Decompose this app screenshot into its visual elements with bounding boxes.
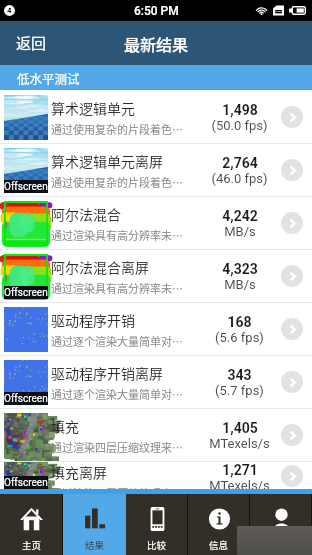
button[interactable]: 主页: [0, 494, 63, 555]
staticText: (46.0 fps): [211, 171, 268, 186]
staticText: 返回: [16, 32, 47, 54]
staticText: 343: [227, 367, 252, 383]
staticText: 4,323: [222, 261, 258, 277]
staticText: 最新结果: [124, 32, 189, 55]
button[interactable]: 阿尔法混合: [0, 197, 312, 250]
staticText: MB/s: [224, 224, 256, 239]
staticText: MB/s: [224, 277, 256, 292]
staticText: 通过逐个渲染大量简单对…: [51, 333, 183, 349]
staticText: 通过渲染四层压缩纹理来…: [51, 485, 183, 489]
staticText: 通过逐个渲染大量简单对…: [51, 386, 183, 402]
staticText: 算术逻辑单元: [51, 98, 135, 118]
staticText: 4: [7, 6, 12, 15]
staticText: 1,271: [222, 462, 258, 478]
button[interactable]: Offscreen: [0, 356, 312, 409]
staticText: 比较: [147, 538, 167, 552]
staticText: 低水平测试: [17, 69, 80, 87]
staticText: (50.0 fps): [211, 118, 268, 133]
button[interactable]: 返回: [0, 21, 63, 65]
staticText: 通过渲染具有高分辨率未…: [51, 280, 183, 296]
button[interactable]: Offscreen: [0, 250, 312, 303]
button[interactable]: 结果: [63, 494, 126, 555]
staticText: 填充: [51, 416, 79, 436]
staticText: 驱动程序开销: [51, 310, 135, 330]
staticText: 结果: [85, 538, 105, 552]
button[interactable]: 驱动程序开销: [0, 303, 312, 356]
staticText: (5.7 fps): [215, 383, 264, 398]
staticText: Offscreen: [4, 181, 48, 193]
staticText: 填充离屏: [51, 462, 107, 482]
staticText: 4,242: [222, 208, 258, 224]
button[interactable]: Profile: [250, 494, 312, 555]
button[interactable]: 填充: [0, 409, 312, 462]
button[interactable]: Offscreen: [0, 144, 312, 197]
staticText: 通过渲染具有高分辨率未…: [51, 227, 183, 243]
button[interactable]: 算术逻辑单元: [0, 91, 312, 144]
staticText: 1,405: [222, 420, 258, 436]
staticText: 阿尔法混合离屏: [51, 257, 149, 277]
staticText: Offscreen: [4, 287, 48, 299]
staticText: 168: [227, 314, 252, 330]
staticText: 6:50 PM: [134, 4, 179, 18]
staticText: 通过使用复杂的片段着色…: [51, 174, 183, 190]
staticText: 1,498: [222, 102, 258, 118]
staticText: Offscreen: [4, 477, 48, 489]
staticText: (5.6 fps): [215, 330, 264, 345]
staticText: MTexels/s: [209, 478, 270, 489]
button[interactable]: 信息: [188, 494, 250, 555]
staticText: 阿尔法混合: [51, 204, 121, 224]
staticText: 算术逻辑单元离屏: [51, 151, 163, 171]
staticText: 2,764: [222, 155, 258, 171]
staticText: 主页: [22, 538, 42, 552]
button[interactable]: Offscreen: [0, 462, 312, 489]
staticText: 驱动程序开销离屏: [51, 363, 163, 383]
staticText: Offscreen: [4, 393, 48, 405]
staticText: 信息: [209, 538, 229, 552]
staticText: MTexels/s: [209, 436, 270, 451]
button[interactable]: 比较: [126, 494, 188, 555]
staticText: 通过渲染四层压缩纹理来…: [51, 439, 183, 455]
staticText: 通过使用复杂的片段着色…: [51, 121, 183, 137]
